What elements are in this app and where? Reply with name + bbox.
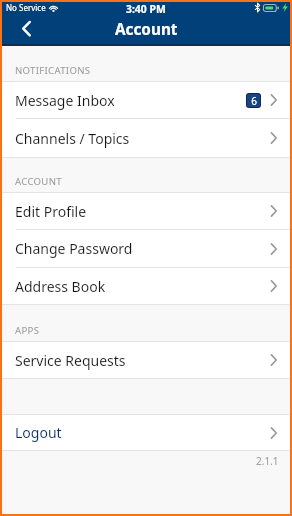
- staticText: APPS: [15, 324, 40, 337]
- button[interactable]: Message Inbox: [2, 82, 290, 119]
- button[interactable]: Change Password: [2, 230, 290, 268]
- staticText: Account: [115, 19, 178, 40]
- staticText: 6: [251, 94, 257, 107]
- button[interactable]: Logout: [2, 415, 290, 450]
- staticText: Change Password: [15, 239, 133, 258]
- button[interactable]: Back: [2, 14, 50, 43]
- staticText: ACCOUNT: [15, 175, 62, 188]
- button[interactable]: Address Book: [2, 268, 290, 304]
- staticText: Channels / Topics: [15, 129, 130, 148]
- staticText: Service Requests: [15, 351, 126, 370]
- button[interactable]: Channels / Topics: [2, 119, 290, 157]
- staticText: Logout: [15, 423, 62, 442]
- button[interactable]: Edit Profile: [2, 193, 290, 230]
- staticText: 3:40 PM: [126, 2, 166, 13]
- button[interactable]: Service Requests: [2, 342, 290, 378]
- staticText: Edit Profile: [15, 202, 87, 221]
- staticText: 2.1.1: [256, 454, 279, 468]
- staticText: Address Book: [15, 277, 106, 296]
- staticText: Message Inbox: [15, 91, 115, 110]
- staticText: No Service: [6, 2, 46, 13]
- staticText: NOTIFICATIONS: [15, 64, 91, 77]
